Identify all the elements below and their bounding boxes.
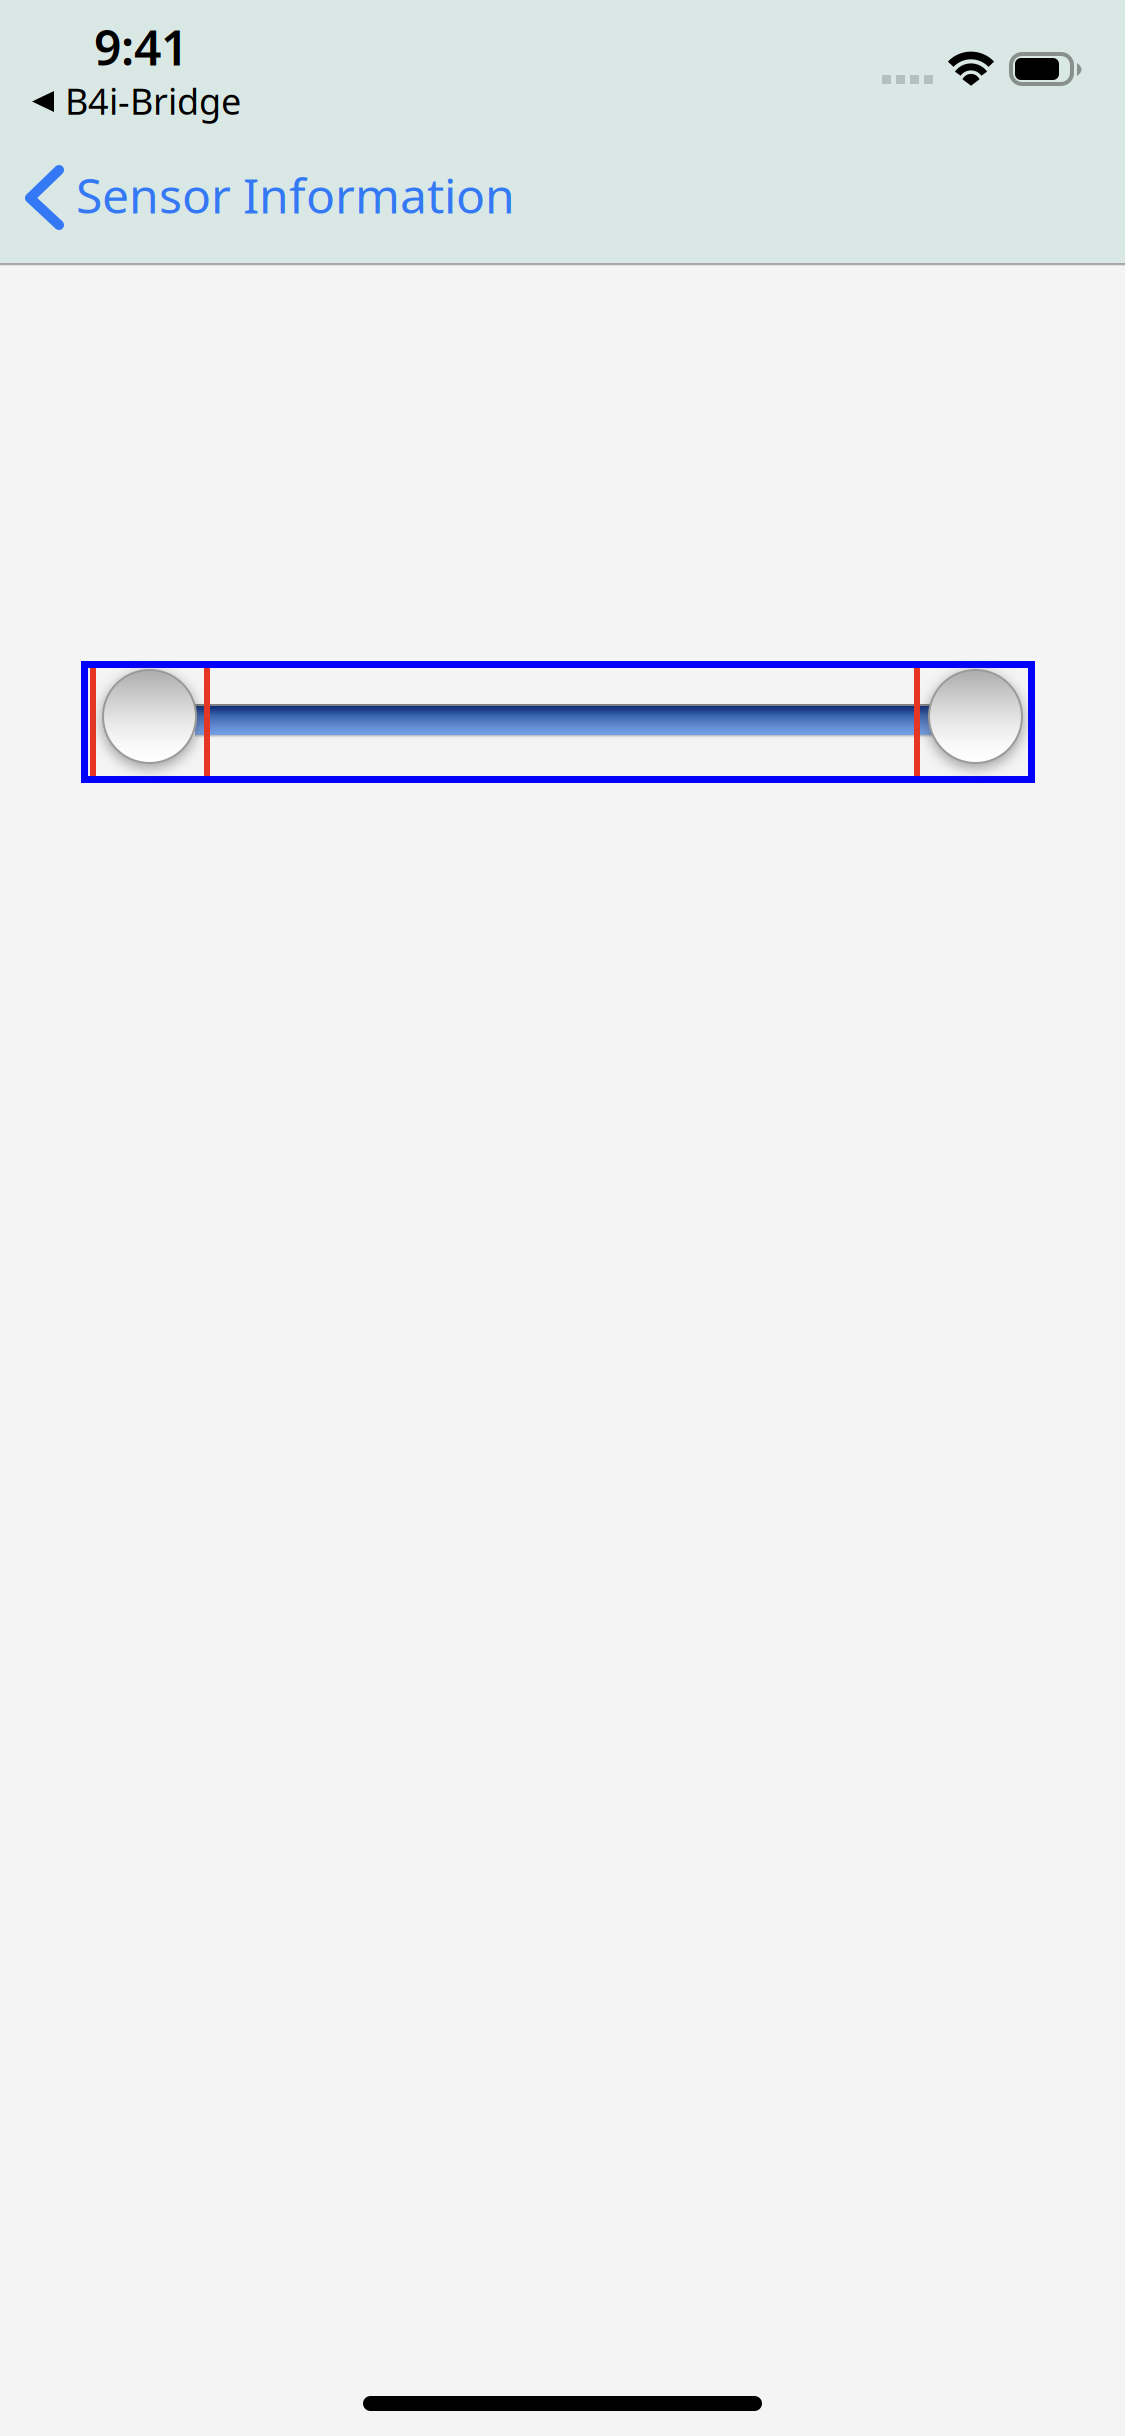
staticText: 9:41 [94, 15, 188, 79]
button[interactable]: Range slider [81, 661, 1035, 783]
staticText: B4i-Bridge [65, 77, 241, 125]
button[interactable]: Sensor Information [0, 0, 520, 80]
button[interactable]: Return to B4i-Bridge [0, 0, 230, 46]
staticText: Sensor Information [76, 163, 515, 227]
